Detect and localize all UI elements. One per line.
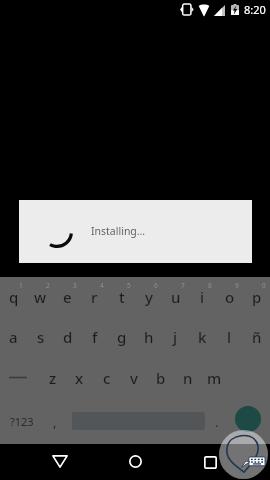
- staticText: l: [227, 327, 232, 347]
- button[interactable]: n: [174, 361, 201, 403]
- staticText: 4: [100, 281, 104, 290]
- button[interactable]: b: [147, 361, 174, 403]
- button[interactable]: r: [81, 277, 108, 319]
- button[interactable]: k: [189, 319, 216, 361]
- staticText: 3: [73, 281, 77, 290]
- button[interactable]: o: [216, 277, 243, 319]
- button[interactable]: Home: [117, 443, 153, 479]
- staticText: p: [252, 287, 262, 307]
- staticText: ?123: [10, 414, 34, 429]
- button[interactable]: g: [108, 319, 135, 361]
- button[interactable]: Back: [42, 443, 78, 479]
- button[interactable]: l: [216, 319, 243, 361]
- button[interactable]: c: [93, 361, 120, 403]
- button[interactable]: f: [81, 319, 108, 361]
- button[interactable]: m: [201, 361, 228, 403]
- staticText: y: [145, 287, 153, 307]
- staticText: b: [156, 368, 166, 388]
- staticText: 8: [208, 281, 212, 290]
- button[interactable]: v: [120, 361, 147, 403]
- button[interactable]: a: [0, 319, 27, 361]
- button[interactable]: i: [189, 277, 216, 319]
- staticText: d: [63, 327, 73, 347]
- staticText: i: [200, 287, 205, 307]
- staticText: h: [144, 327, 154, 347]
- button[interactable]: y: [135, 277, 162, 319]
- staticText: ñ: [252, 327, 262, 347]
- staticText: t: [119, 287, 125, 307]
- button[interactable]: j: [162, 319, 189, 361]
- staticText: Installing…: [91, 224, 146, 238]
- staticText: 9: [235, 281, 239, 290]
- button[interactable]: w: [27, 277, 54, 319]
- staticText: r: [91, 287, 98, 307]
- button[interactable]: Recents: [192, 443, 228, 479]
- staticText: o: [225, 287, 235, 307]
- staticText: ,: [53, 413, 57, 431]
- staticText: 6: [154, 281, 158, 290]
- button[interactable]: Space: [72, 403, 205, 444]
- staticText: g: [117, 327, 127, 347]
- staticText: w: [34, 287, 47, 307]
- staticText: k: [198, 327, 207, 347]
- button[interactable]: .: [205, 403, 234, 444]
- staticText: f: [92, 327, 98, 347]
- button[interactable]: h: [135, 319, 162, 361]
- staticText: 0: [262, 281, 266, 290]
- staticText: 7: [181, 281, 185, 290]
- staticText: c: [103, 368, 111, 388]
- staticText: j: [173, 327, 178, 347]
- staticText: n: [183, 368, 193, 388]
- button[interactable]: q: [0, 277, 27, 319]
- button[interactable]: e: [54, 277, 81, 319]
- button[interactable]: Shift: [0, 361, 39, 403]
- button[interactable]: x: [66, 361, 93, 403]
- button[interactable]: ?123: [0, 403, 41, 444]
- button[interactable]: s: [27, 319, 54, 361]
- staticText: z: [49, 368, 57, 388]
- staticText: u: [171, 287, 181, 307]
- staticText: s: [37, 327, 45, 347]
- staticText: v: [130, 368, 138, 388]
- staticText: q: [9, 287, 19, 307]
- staticText: m: [207, 368, 222, 388]
- button[interactable]: Action: [235, 406, 261, 432]
- button[interactable]: z: [39, 361, 66, 403]
- button[interactable]: t: [108, 277, 135, 319]
- button[interactable]: d: [54, 319, 81, 361]
- staticText: .: [215, 413, 219, 431]
- button[interactable]: Enter: [234, 403, 270, 444]
- staticText: 2: [46, 281, 50, 290]
- staticText: 8:20: [244, 2, 266, 17]
- button[interactable]: p: [243, 277, 270, 319]
- staticText: e: [63, 287, 72, 307]
- staticText: x: [75, 368, 84, 388]
- button[interactable]: ñ: [243, 319, 270, 361]
- staticText: 5: [127, 281, 131, 290]
- staticText: a: [9, 327, 18, 347]
- button[interactable]: Installing…: [19, 200, 252, 263]
- button[interactable]: u: [162, 277, 189, 319]
- staticText: 1: [19, 281, 23, 290]
